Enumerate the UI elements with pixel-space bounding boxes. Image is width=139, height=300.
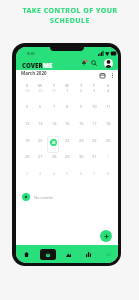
staticText: TAKE CONTROL OF YOUR (22, 6, 118, 16)
staticText: S (26, 83, 29, 88)
button[interactable]: Home (16, 245, 37, 263)
button[interactable]: 12 (20, 117, 34, 130)
button[interactable]: 3 (33, 167, 47, 180)
staticText: T (80, 83, 83, 88)
staticText: 1 (107, 154, 110, 159)
staticText: 1 (66, 88, 69, 93)
staticText: 12 (25, 121, 30, 126)
staticText: F (93, 83, 96, 88)
button[interactable]: 2 (20, 167, 34, 180)
staticText: 8 (66, 104, 69, 109)
button[interactable]: 19 (20, 134, 34, 147)
button[interactable]: 16 (74, 117, 88, 130)
button[interactable]: 21 March selected (47, 136, 59, 153)
button[interactable]: 15 (60, 117, 74, 130)
button[interactable]: Calendar (37, 245, 58, 263)
button[interactable]: Reports (78, 245, 98, 263)
button[interactable]: 4 (47, 167, 61, 180)
staticText: 25 (106, 138, 111, 143)
button[interactable]: 28 (47, 150, 61, 163)
staticText: 17 (92, 121, 97, 126)
staticText: 30 (38, 88, 43, 93)
staticText: 8 (107, 171, 110, 176)
button[interactable]: 13 (33, 117, 47, 130)
staticText: M (38, 83, 42, 88)
button[interactable]: 18 (101, 117, 115, 130)
staticText: 27 (38, 154, 43, 159)
staticText: 3 (93, 88, 96, 93)
button[interactable]: 29 (60, 150, 74, 163)
staticText: No events (34, 195, 53, 200)
button[interactable]: 23 (74, 134, 88, 147)
button[interactable]: Calendar view (97, 70, 107, 80)
button[interactable]: 29 (20, 84, 34, 97)
button[interactable]: 1 (60, 84, 74, 97)
staticText: T (53, 83, 56, 88)
staticText: 9:41 (27, 51, 35, 56)
button[interactable]: 7 (47, 100, 61, 113)
staticText: 7 (53, 104, 56, 109)
button[interactable]: COVER (22, 61, 53, 69)
button[interactable]: 31 (47, 84, 61, 97)
button[interactable]: 8 (101, 167, 115, 180)
button[interactable]: 30 (33, 84, 47, 97)
button[interactable]: 6 (74, 167, 88, 180)
staticText: 14 (52, 121, 57, 126)
staticText: 31 (92, 154, 97, 159)
staticText: ME (43, 61, 53, 69)
staticText: COVER (22, 61, 43, 69)
button[interactable]: 9 (74, 100, 88, 113)
staticText: 10 (92, 104, 97, 109)
staticText: 30 (79, 154, 84, 159)
button[interactable]: 3 (87, 84, 101, 97)
staticText: W (65, 83, 69, 88)
button[interactable]: 31 (87, 150, 101, 163)
staticText: 24 (92, 138, 97, 143)
button[interactable]: 25 (101, 134, 115, 147)
staticText: 20 (38, 138, 43, 143)
button[interactable]: 24 (87, 134, 101, 147)
button[interactable]: 5 (60, 167, 74, 180)
button[interactable]: 2 (74, 84, 88, 97)
button[interactable]: 26 (20, 150, 34, 163)
staticText: 29 (65, 154, 70, 159)
button[interactable] (47, 134, 61, 147)
staticText: 29 (25, 88, 30, 93)
staticText: 16 (79, 121, 84, 126)
button[interactable]: Profile (104, 59, 113, 68)
button[interactable]: Shifts (58, 245, 78, 263)
staticText: 19 (25, 138, 30, 143)
staticText: 9 (80, 104, 83, 109)
button[interactable]: No events (22, 193, 53, 201)
button[interactable]: 17 (87, 117, 101, 130)
button[interactable]: Search (89, 58, 99, 68)
staticText: 28 (52, 154, 57, 159)
button[interactable]: 22 (60, 134, 74, 147)
staticText: 23 (79, 138, 84, 143)
staticText: 5 (66, 171, 69, 176)
button[interactable]: 14 (47, 117, 61, 130)
button[interactable]: Add event (100, 230, 112, 242)
staticText: 3 (39, 171, 42, 176)
button[interactable]: 4 (101, 84, 115, 97)
button[interactable]: 8 (60, 100, 74, 113)
staticText: 7 (93, 171, 96, 176)
button[interactable]: 20 (33, 134, 47, 147)
button[interactable]: More (98, 245, 118, 263)
button[interactable]: 11 (101, 100, 115, 113)
button[interactable]: 5 (20, 100, 34, 113)
staticText: 6 (39, 104, 42, 109)
staticText: 13 (38, 121, 43, 126)
button[interactable]: 6 (33, 100, 47, 113)
button[interactable]: 10 (87, 100, 101, 113)
button[interactable]: 30 (74, 150, 88, 163)
staticText: S (107, 83, 110, 88)
button[interactable]: 27 (33, 150, 47, 163)
staticText: 31 (52, 88, 57, 93)
button[interactable]: More options (107, 70, 117, 80)
button[interactable]: Notifications (79, 58, 89, 68)
staticText: 5 (26, 104, 29, 109)
staticText: 11 (106, 104, 111, 109)
